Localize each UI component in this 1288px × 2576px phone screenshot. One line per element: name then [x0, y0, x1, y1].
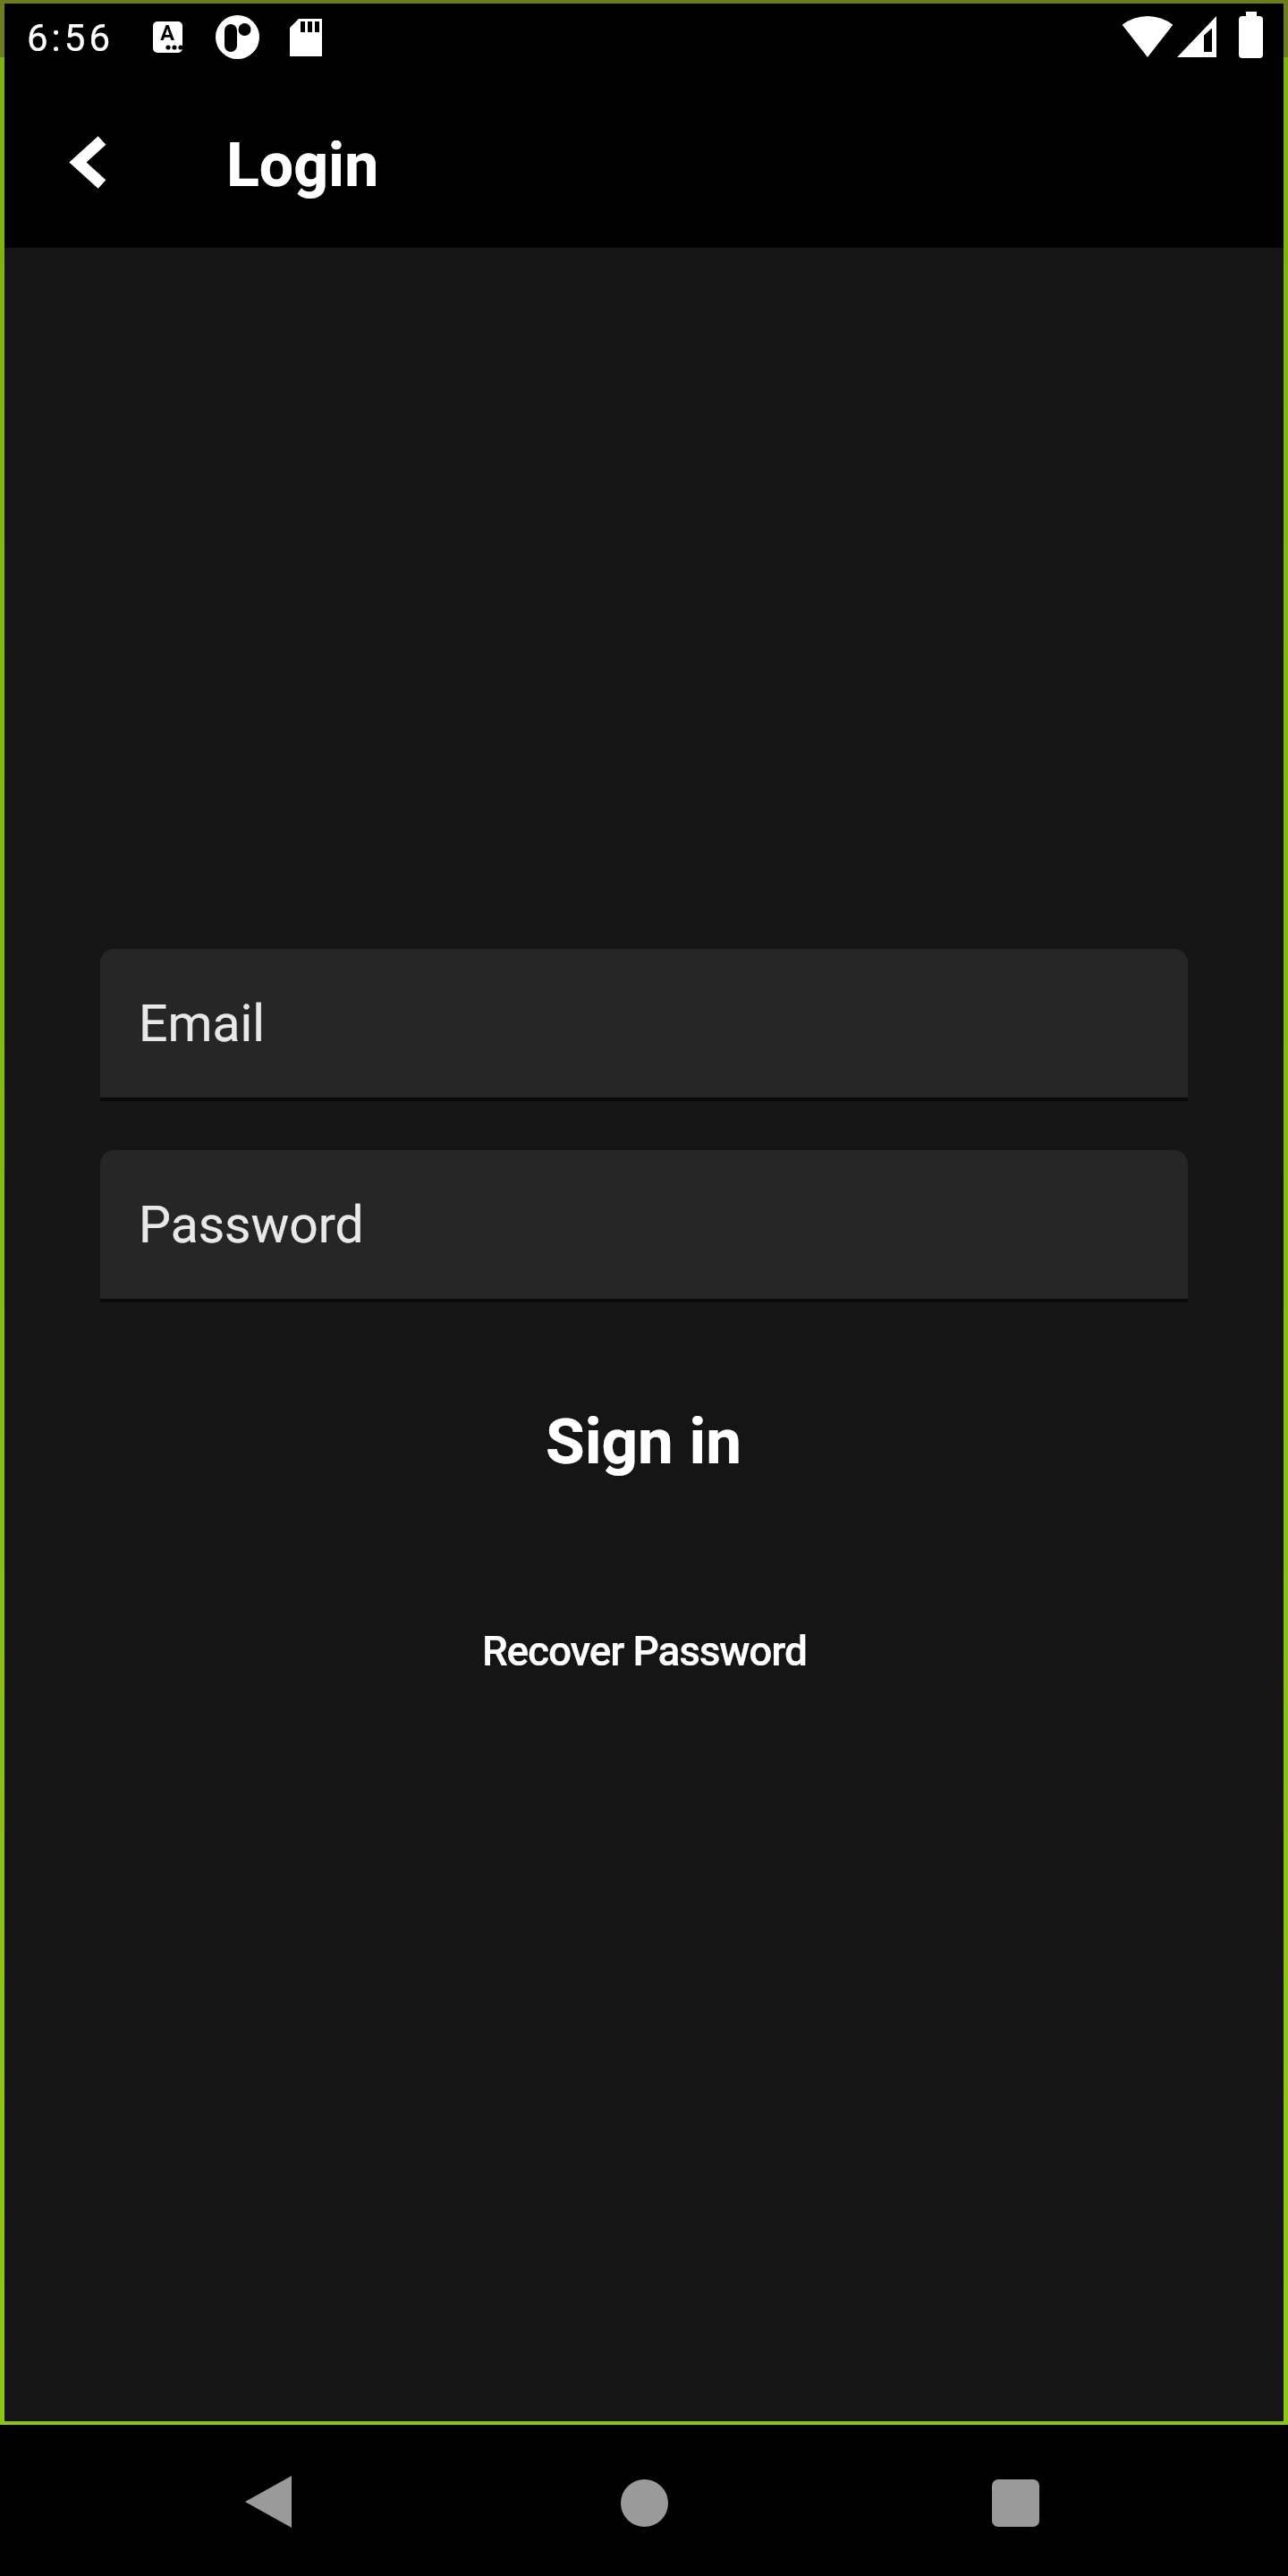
button[interactable]: Recover Password: [450, 1616, 839, 1686]
button[interactable]: [604, 2462, 684, 2543]
staticText: A: [160, 21, 175, 46]
button[interactable]: [56, 129, 123, 196]
button[interactable]: Sign in: [513, 1394, 775, 1489]
staticText: 6:56: [27, 16, 114, 60]
button[interactable]: [975, 2462, 1055, 2543]
staticText: Password: [139, 1195, 364, 1255]
button[interactable]: [228, 2462, 309, 2542]
staticText: Recover Password: [482, 1627, 807, 1675]
button[interactable]: Password: [100, 1150, 1188, 1299]
staticText: Login: [226, 130, 379, 201]
button[interactable]: Email: [100, 949, 1188, 1097]
staticText: Sign in: [546, 1404, 742, 1479]
staticText: Email: [139, 994, 266, 1054]
